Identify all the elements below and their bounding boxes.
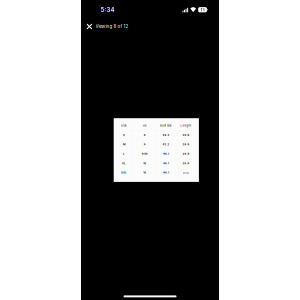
- staticText: 10: [143, 171, 146, 174]
- button[interactable]: Close: [83, 20, 95, 32]
- staticText: Bust size: [160, 124, 172, 127]
- staticText: US: [143, 124, 147, 127]
- staticText: Viewing 8 of 12: [96, 24, 129, 29]
- staticText: 9: [144, 143, 146, 146]
- staticText: 42.2: [162, 143, 169, 146]
- staticText: 5:34: [100, 6, 114, 13]
- staticText: 9/10: [142, 152, 148, 155]
- staticText: 26.8: [183, 162, 190, 165]
- staticText: 27.2: [183, 171, 189, 174]
- staticText: 26.8: [183, 133, 190, 136]
- staticText: 26.8: [183, 152, 190, 155]
- staticText: 46.1: [163, 171, 169, 174]
- staticText: L: [123, 152, 125, 155]
- staticText: XL: [122, 162, 126, 165]
- staticText: S: [123, 133, 125, 136]
- button[interactable]: Size chart photo, 8 of 12: [114, 118, 199, 182]
- staticText: XXL: [121, 171, 127, 174]
- staticText: 39.3: [162, 133, 169, 136]
- staticText: Length: [181, 124, 192, 127]
- staticText: 8: [144, 133, 146, 136]
- staticText: 46.1: [163, 162, 169, 165]
- staticText: Size: [121, 124, 127, 127]
- staticText: 10: [143, 162, 146, 165]
- staticText: 46.1: [163, 152, 169, 155]
- staticText: M: [123, 143, 125, 146]
- staticText: 26.8: [183, 143, 190, 146]
